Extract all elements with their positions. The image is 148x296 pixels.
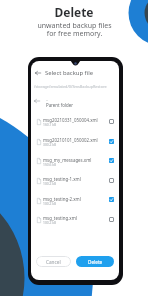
staticText: unwanted backup files for free memory. xyxy=(37,21,112,38)
button[interactable] xyxy=(31,132,119,152)
staticText: .. xyxy=(46,97,49,102)
button[interactable] xyxy=(31,113,119,133)
button[interactable] xyxy=(31,211,119,231)
staticText: 100.2 kB xyxy=(43,181,57,185)
staticText: Cancel xyxy=(46,259,61,265)
staticText: 100.2 kB xyxy=(43,220,57,224)
staticText: msg20210331_050004.xml xyxy=(43,117,98,123)
button[interactable] xyxy=(31,152,119,172)
staticText: 100.2 kB xyxy=(43,201,57,205)
staticText: msg_my_messages.xml xyxy=(43,157,92,163)
button[interactable]: Selected xyxy=(109,139,114,144)
staticText: Delete xyxy=(54,4,94,20)
button[interactable]: Delete xyxy=(76,256,114,267)
button[interactable]: Selected xyxy=(109,158,114,163)
button[interactable]: Cancel xyxy=(36,256,71,267)
staticText: Select backup file xyxy=(45,69,93,77)
button[interactable]: Selected xyxy=(109,197,114,202)
button[interactable]: Back xyxy=(35,70,41,76)
button[interactable]: Not selected xyxy=(109,119,114,124)
button[interactable] xyxy=(31,171,119,191)
staticText: 160.1 kB xyxy=(43,122,57,126)
other: Back xyxy=(35,70,41,76)
staticText: 300.2 kB xyxy=(43,142,57,146)
staticText: Parent folder xyxy=(46,102,74,108)
staticText: msg_testing-1.xml xyxy=(43,176,81,182)
button[interactable]: Not selected xyxy=(109,217,114,222)
other: Back xyxy=(34,98,40,104)
staticText: 150.6 kB xyxy=(43,162,57,166)
staticText: Delete xyxy=(88,259,103,265)
staticText: msg20210101_050002.xml xyxy=(43,137,98,143)
button[interactable]: Not selected xyxy=(109,178,114,183)
staticText: msg_testing.xml xyxy=(43,215,77,221)
button[interactable] xyxy=(31,191,119,211)
staticText: /storage/emulated/0/SmsBackupRestore xyxy=(34,84,107,89)
staticText: msg_testing-2.xml xyxy=(43,196,81,202)
button[interactable] xyxy=(31,95,119,111)
